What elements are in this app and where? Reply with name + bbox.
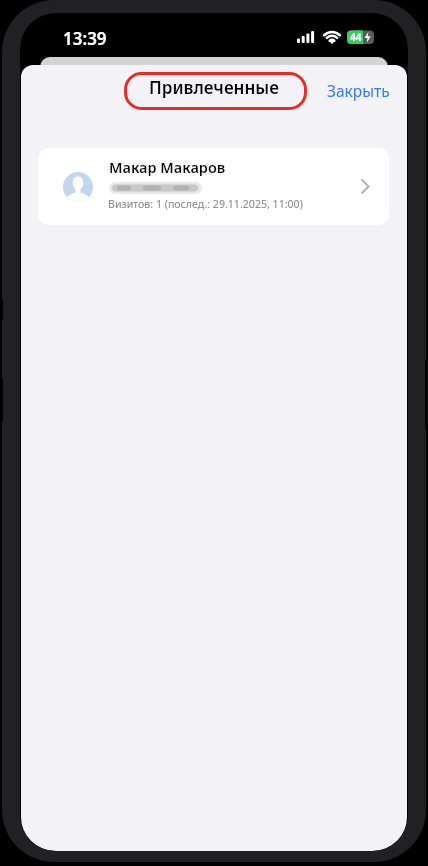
staticText: Визитов: 1 (послед.: 29.11.2025, 11:00) — [108, 197, 303, 211]
staticText: Привлеченные — [21, 76, 407, 99]
button[interactable]: Закрыть — [321, 77, 395, 103]
button[interactable]: Макар Макаров — [38, 148, 389, 225]
staticText: 13:39 — [63, 27, 107, 50]
staticText: Макар Макаров — [109, 157, 226, 177]
staticText: 44 — [350, 30, 362, 44]
staticText: Закрыть — [327, 80, 390, 101]
